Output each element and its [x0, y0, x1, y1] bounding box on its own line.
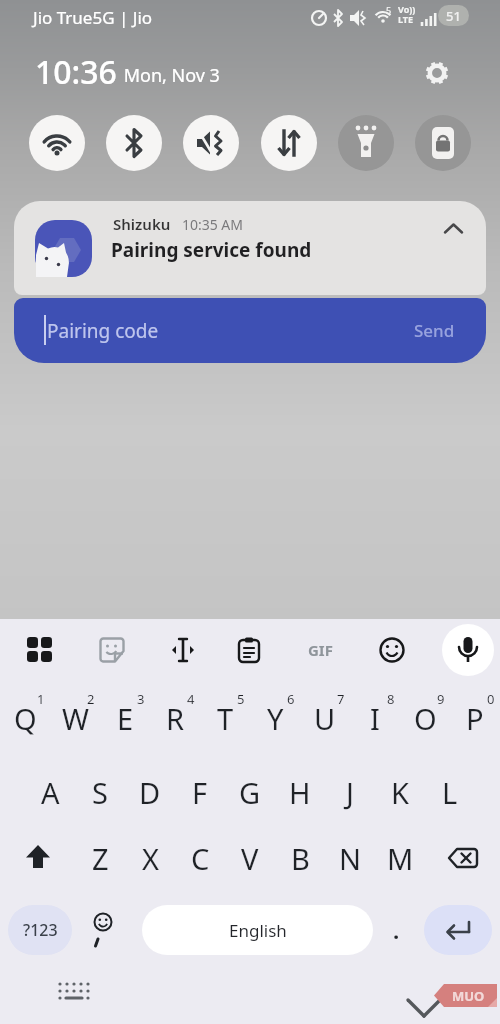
staticText: 9 — [437, 690, 445, 708]
button[interactable]: N — [325, 833, 375, 883]
button[interactable]: ?123 — [8, 905, 72, 955]
staticText: Pairing service found — [111, 237, 312, 263]
staticText: Q — [14, 699, 37, 738]
staticText: N — [339, 839, 362, 878]
staticText: W — [62, 699, 89, 738]
button[interactable]: C — [175, 833, 225, 883]
button[interactable] — [368, 626, 416, 674]
button[interactable]: D — [125, 769, 175, 815]
staticText: ?123 — [23, 919, 58, 941]
staticText: 6 — [287, 690, 295, 708]
staticText: 10:36 — [35, 50, 117, 94]
button[interactable]: Send — [414, 319, 455, 342]
button[interactable]: 3 — [100, 687, 150, 743]
button[interactable]: 5 — [200, 687, 250, 743]
button[interactable]: S — [75, 769, 125, 815]
button[interactable]: 6 — [250, 687, 300, 743]
button[interactable] — [442, 624, 494, 676]
staticText: Y — [267, 699, 284, 738]
staticText: E — [117, 699, 134, 738]
button[interactable]: 0 — [450, 687, 500, 743]
button[interactable] — [88, 626, 136, 674]
button[interactable] — [261, 115, 317, 171]
staticText: 3 — [137, 690, 145, 708]
staticText: B — [291, 839, 310, 878]
button[interactable]: B — [275, 833, 325, 883]
staticText: K — [391, 773, 409, 812]
staticText: H — [289, 773, 311, 812]
button[interactable]: 7 — [300, 687, 350, 743]
button[interactable]: M — [375, 833, 425, 883]
staticText: S — [92, 773, 108, 812]
button[interactable] — [225, 626, 273, 674]
staticText: V — [241, 839, 259, 878]
button[interactable] — [425, 833, 500, 883]
button[interactable]: 2 — [50, 687, 100, 743]
button[interactable]: Pairing code — [14, 298, 486, 363]
staticText: 8 — [387, 690, 395, 708]
staticText: G — [239, 773, 261, 812]
staticText: Shizuku — [113, 214, 171, 234]
button[interactable]: F — [175, 769, 225, 815]
staticText: English — [229, 919, 287, 942]
staticText: O — [414, 699, 437, 738]
staticText: 10:35 AM — [171, 215, 243, 234]
button[interactable]: . — [375, 905, 417, 955]
staticText: X — [142, 839, 159, 878]
staticText: I — [370, 699, 380, 738]
button[interactable]: G — [225, 769, 275, 815]
button[interactable] — [0, 833, 75, 883]
staticText: Z — [92, 839, 109, 878]
staticText: C — [191, 839, 210, 878]
staticText: 2 — [87, 690, 95, 708]
staticText: Pairing code — [47, 318, 159, 344]
button[interactable]: A — [25, 769, 75, 815]
button[interactable] — [424, 60, 450, 86]
staticText: . — [393, 915, 400, 945]
button[interactable] — [16, 626, 64, 674]
button[interactable]: 9 — [400, 687, 450, 743]
staticText: 0 — [487, 690, 495, 708]
staticText: 5 — [386, 4, 392, 16]
staticText: Vo)) LTE — [398, 3, 416, 25]
staticText: M — [387, 839, 414, 878]
button[interactable] — [29, 115, 85, 171]
button[interactable]: 8 — [350, 687, 400, 743]
staticText: J — [346, 773, 354, 812]
button[interactable]: 1 — [0, 687, 50, 743]
staticText: P — [466, 699, 484, 738]
button[interactable]: L — [425, 769, 475, 815]
button[interactable]: K — [375, 769, 425, 815]
button[interactable]: H — [275, 769, 325, 815]
staticText: 7 — [337, 690, 345, 708]
button[interactable]: Z — [75, 833, 125, 883]
button[interactable] — [415, 115, 471, 171]
button[interactable]: Shizuku — [14, 201, 486, 295]
button[interactable]: J — [325, 769, 375, 815]
button[interactable] — [78, 905, 123, 955]
button[interactable]: 4 — [150, 687, 200, 743]
staticText: 1 — [37, 690, 45, 708]
staticText: R — [166, 699, 185, 738]
staticText: 51 — [446, 7, 461, 25]
button[interactable]: X — [125, 833, 175, 883]
staticText: 4 — [187, 690, 195, 708]
staticText: U — [314, 699, 336, 738]
button[interactable] — [183, 115, 239, 171]
staticText: A — [41, 773, 60, 812]
staticText: Send — [414, 319, 455, 342]
staticText: Jio True5G | Jio — [33, 6, 153, 29]
staticText: F — [192, 773, 208, 812]
staticText: L — [442, 773, 458, 812]
button[interactable] — [338, 115, 394, 171]
button[interactable] — [159, 626, 207, 674]
staticText: D — [139, 773, 161, 812]
button[interactable]: GIF — [296, 626, 344, 674]
button[interactable] — [106, 115, 162, 171]
staticText: 5 — [237, 690, 245, 708]
button[interactable]: V — [225, 833, 275, 883]
button[interactable]: English — [142, 905, 373, 955]
staticText: MUO — [452, 987, 485, 1005]
staticText: Mon, Nov 3 — [119, 63, 220, 88]
button[interactable] — [424, 905, 492, 955]
